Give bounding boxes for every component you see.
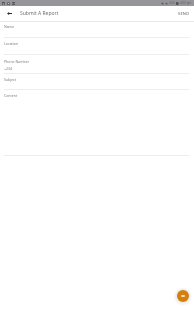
button[interactable]: Subject field bbox=[4, 74, 194, 89]
button[interactable]: SEND bbox=[173, 8, 194, 19]
staticText: Subject bbox=[4, 77, 17, 82]
staticText: 4:50 pm bbox=[180, 1, 192, 5]
button[interactable]: Location field bbox=[4, 38, 194, 54]
button[interactable]: Phone Number field bbox=[4, 56, 194, 73]
staticText: Name bbox=[4, 24, 14, 29]
button[interactable]: Back bbox=[0, 6, 18, 21]
button[interactable]: Name field bbox=[4, 22, 194, 37]
staticText: 4:35 bbox=[169, 1, 175, 5]
staticText: Content bbox=[4, 93, 18, 98]
staticText: Submit A Report bbox=[20, 10, 59, 17]
button[interactable]: Add photo bbox=[177, 290, 189, 302]
staticText: SEND bbox=[178, 11, 190, 16]
staticText: +234 bbox=[4, 66, 13, 71]
staticText: Location bbox=[4, 41, 19, 46]
staticText: Phone Number bbox=[4, 59, 30, 64]
